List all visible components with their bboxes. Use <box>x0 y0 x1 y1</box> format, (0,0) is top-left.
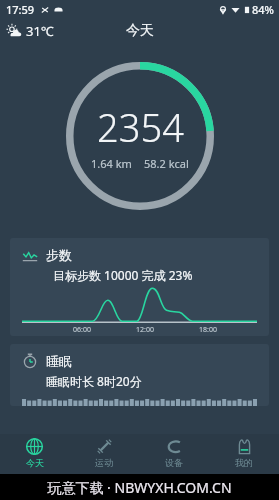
staticText: 睡眠 <box>46 353 72 369</box>
staticText: 12:00 <box>136 325 154 335</box>
staticText: 17:59 <box>6 2 35 17</box>
staticText: 玩意下载 · NBWYXH.COM.CN <box>47 478 232 497</box>
staticText: 18:00 <box>199 325 217 335</box>
staticText: 58.2 kcal <box>144 156 189 171</box>
staticText: 06:00 <box>73 325 91 335</box>
button[interactable]: 睡眠 <box>10 344 269 406</box>
button[interactable]: 设备 <box>139 434 209 474</box>
button[interactable]: 运动 <box>69 434 139 474</box>
staticText: 设备 <box>165 457 183 468</box>
staticText: 我的 <box>235 457 253 468</box>
staticText: 步数 <box>46 247 72 263</box>
button[interactable]: Weather 31 degrees <box>7 22 54 40</box>
staticText: 2354 <box>97 101 184 153</box>
staticText: 目标步数 10000 完成 23% <box>53 267 193 283</box>
button[interactable]: 我的 <box>209 434 279 474</box>
staticText: 睡眠时长 8时20分 <box>46 373 142 389</box>
staticText: 今天 <box>26 457 44 468</box>
button[interactable]: Daily steps 2354 <box>66 62 214 210</box>
button[interactable]: 今天 <box>0 434 69 474</box>
staticText: 今天 <box>126 22 154 40</box>
button[interactable]: 步数 <box>10 238 269 336</box>
staticText: 运动 <box>95 457 113 468</box>
staticText: 1.64 km <box>91 156 132 171</box>
staticText: 84% <box>252 2 274 17</box>
staticText: 31℃ <box>26 22 54 40</box>
